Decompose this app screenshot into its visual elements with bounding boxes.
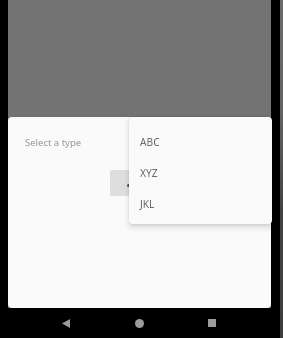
staticText: JKL [140, 197, 155, 211]
button[interactable]: XYZ [129, 157, 272, 188]
staticText: ABC [140, 135, 160, 149]
staticText: Select a type [25, 136, 82, 149]
button[interactable]: ABC [129, 126, 272, 157]
button[interactable]: Home [126, 308, 152, 338]
button[interactable]: Recent apps [199, 308, 225, 338]
staticText: XYZ [140, 166, 158, 180]
button[interactable]: JKL [129, 188, 272, 219]
button[interactable]: Back [53, 308, 79, 338]
button[interactable]: Open type dropdown [110, 170, 140, 196]
